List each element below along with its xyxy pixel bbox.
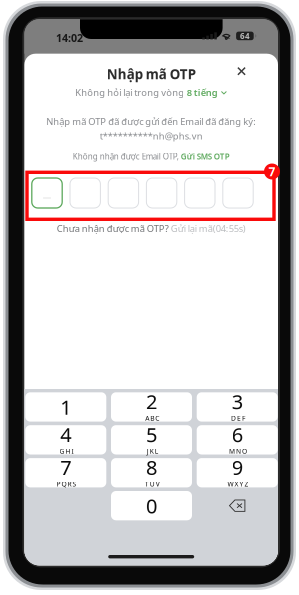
button[interactable]: Ô mã OTP 6 (223, 178, 253, 208)
button[interactable]: Không nhận được Email OTP, (24, 151, 278, 162)
staticText: TUV (145, 480, 160, 488)
staticText: Nhập mã OTP đã được gửi đến Email đã đăn… (46, 115, 256, 128)
staticText: JKL (147, 447, 158, 456)
staticText: Gửi SMS OTP (181, 151, 230, 162)
button[interactable]: 4 (25, 425, 106, 454)
staticText: 5 (146, 421, 157, 448)
staticText: Nhập mã OTP (107, 65, 196, 83)
button[interactable]: 9 (197, 458, 278, 487)
button[interactable]: 5 (111, 425, 192, 454)
staticText: 64 (240, 31, 250, 41)
button[interactable]: Ô mã OTP 4 (146, 178, 177, 208)
button[interactable]: Không hỏi lại trong vòng (24, 86, 278, 99)
staticText: PQRS (56, 480, 76, 488)
staticText: 8 tiếng (187, 86, 218, 99)
button[interactable]: 7 (25, 458, 106, 487)
staticText: DEF (231, 414, 245, 423)
staticText: 7 (60, 454, 71, 481)
button[interactable]: Ô mã OTP 3 (108, 178, 139, 208)
staticText: GHI (59, 447, 73, 456)
staticText: MNO (229, 447, 247, 456)
staticText: 1 (60, 394, 71, 420)
staticText: 0 (146, 492, 157, 519)
staticText: 8 (146, 454, 157, 481)
staticText: Không hỏi lại trong vòng (75, 86, 184, 99)
staticText: 3 (232, 388, 243, 415)
staticText: 4 (60, 421, 71, 448)
staticText: 7 (268, 163, 275, 179)
staticText: t**********nh@phs.vn (100, 130, 203, 142)
staticText: 2 (146, 388, 157, 415)
staticText: 6 (232, 421, 243, 448)
button[interactable]: Ô mã OTP 1 (32, 178, 62, 208)
staticText: ABC (145, 414, 159, 423)
button[interactable]: 0 (111, 491, 192, 520)
button[interactable]: 8 (111, 458, 192, 487)
button[interactable]: 3 (197, 392, 278, 422)
staticText: Gửi lại mã(04:55s) (171, 222, 246, 235)
staticText: Chưa nhận được mã OTP? (57, 222, 171, 235)
button[interactable]: Xóa (197, 491, 278, 520)
button[interactable]: 6 (197, 425, 278, 454)
button[interactable]: Ô mã OTP 2 (70, 178, 100, 208)
staticText: Không nhận được Email OTP, (73, 151, 181, 162)
staticText: 9 (232, 454, 243, 481)
button[interactable]: 1 (25, 392, 106, 422)
button[interactable]: Ô mã OTP 5 (185, 178, 215, 208)
staticText: WXYZ (227, 480, 248, 488)
staticText: 14:02 (56, 31, 83, 45)
button[interactable]: 2 (111, 392, 192, 422)
button[interactable]: Đóng (233, 63, 249, 79)
